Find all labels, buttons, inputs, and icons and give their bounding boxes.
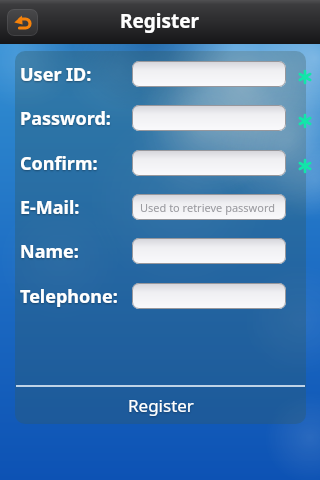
staticText: Telephone:	[20, 284, 118, 309]
staticText: Used to retrieve password	[140, 200, 276, 215]
button[interactable]: Register	[15, 387, 306, 424]
button[interactable]	[7, 9, 38, 36]
staticText: User ID:	[20, 62, 92, 87]
staticText: Register	[120, 8, 200, 34]
staticText: Name:	[20, 239, 79, 264]
button[interactable]: Used to retrieve password	[132, 194, 286, 220]
button[interactable]	[132, 283, 286, 309]
button[interactable]	[132, 150, 286, 176]
staticText: Register	[128, 394, 194, 417]
button[interactable]	[132, 61, 286, 87]
button[interactable]	[132, 238, 286, 264]
staticText: Confirm:	[20, 151, 98, 176]
button[interactable]	[132, 105, 286, 131]
staticText: E-Mail:	[20, 195, 80, 220]
staticText: Password:	[20, 106, 111, 131]
